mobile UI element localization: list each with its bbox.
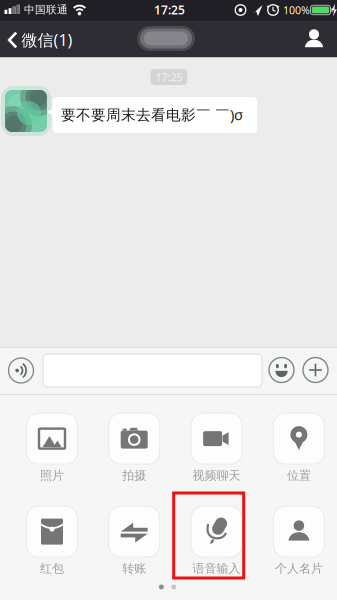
button[interactable]: 按住说话	[8, 358, 33, 383]
button[interactable]: 输入消息	[43, 354, 262, 387]
staticText: 要不要周末去看电影￣ ￣)σ	[61, 105, 243, 124]
button[interactable]: 转账	[94, 505, 174, 577]
staticText: 拍摄	[122, 468, 146, 483]
staticText: 个人名片	[275, 561, 323, 576]
button[interactable]: 表情	[269, 357, 294, 382]
button[interactable]: 位置	[259, 412, 337, 484]
staticText: 中国联通	[24, 3, 68, 16]
staticText: 转账	[122, 561, 146, 576]
staticText: 红包	[40, 561, 64, 576]
staticText: 视频聊天	[193, 468, 241, 483]
button[interactable]: 个人名片	[259, 505, 337, 577]
button[interactable]: 视频聊天	[177, 412, 257, 484]
button[interactable]: 语音输入	[177, 505, 257, 577]
staticText: 微信(1)	[21, 29, 72, 50]
staticText: 照片	[40, 468, 64, 483]
staticText: 17:25	[155, 70, 182, 84]
button[interactable]: 红包	[12, 505, 92, 577]
button[interactable]: 聊天信息	[299, 21, 329, 57]
staticText: 位置	[287, 468, 311, 483]
staticText: 17:25	[154, 2, 185, 18]
button[interactable]: 拍摄	[94, 412, 174, 484]
staticText: 100%	[283, 3, 310, 17]
button[interactable]: 更多功能	[303, 357, 328, 382]
button[interactable]: 照片	[12, 412, 92, 484]
button[interactable]: 好友头像	[5, 90, 47, 132]
staticText: 语音输入	[193, 561, 241, 576]
button[interactable]: 返回微信	[0, 25, 84, 55]
